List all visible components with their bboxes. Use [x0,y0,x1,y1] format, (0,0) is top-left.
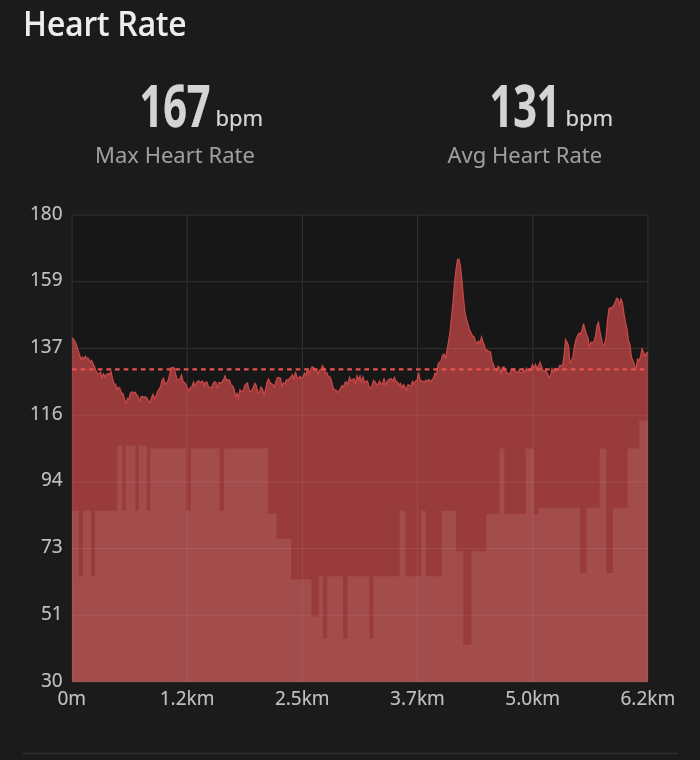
button[interactable]: Heart Rate chart [0,0,700,760]
